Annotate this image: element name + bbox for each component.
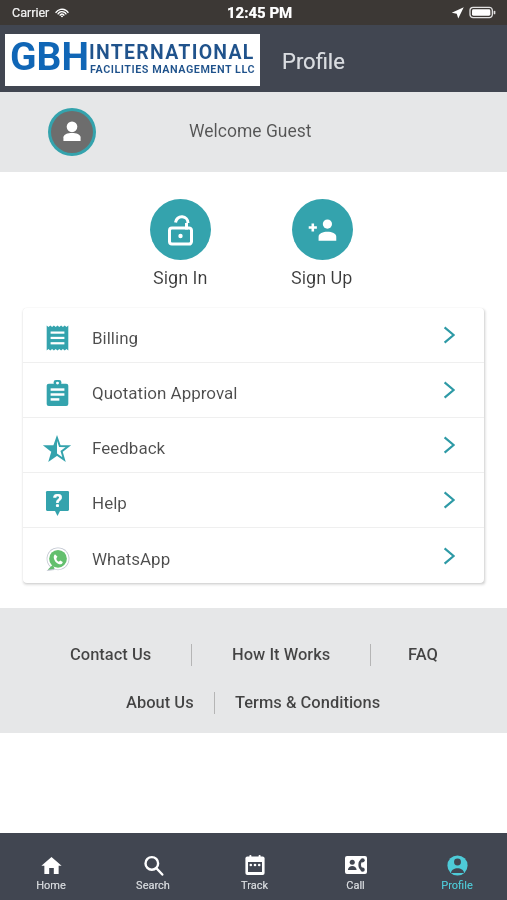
button[interactable]: Profile	[406, 833, 507, 900]
staticText: Profile	[441, 879, 473, 892]
button[interactable]: GBH International Facilities Management …	[5, 34, 260, 86]
staticText: Terms & Conditions	[235, 693, 381, 712]
button[interactable]: Quotation Approval	[23, 363, 484, 418]
staticText: Sign In	[153, 267, 208, 288]
staticText: WhatsApp	[92, 549, 171, 569]
button[interactable]: About Us	[126, 690, 214, 715]
button[interactable]: Terms & Conditions	[215, 690, 381, 715]
staticText: FACILITIES MANAGEMENT LLC	[90, 63, 256, 76]
button[interactable]: Sign Up	[291, 199, 353, 288]
staticText: Feedback	[92, 438, 166, 458]
button[interactable]: FAQ	[371, 642, 438, 667]
staticText: Billing	[92, 328, 139, 348]
staticText: INTERNATIONAL	[89, 41, 255, 64]
staticText: Quotation Approval	[92, 383, 238, 403]
button[interactable]: Contact Us	[70, 642, 191, 667]
button[interactable]: ?	[23, 473, 484, 528]
staticText: Contact Us	[70, 645, 152, 664]
button[interactable]: Feedback	[23, 418, 484, 473]
staticText: How It Works	[232, 645, 331, 664]
button[interactable]: Home	[0, 833, 102, 900]
button[interactable]: Search	[102, 833, 204, 900]
staticText: FAQ	[408, 645, 438, 664]
staticText: Track	[241, 879, 268, 892]
staticText: 12:45 PM	[227, 4, 293, 22]
staticText: GBH	[10, 34, 90, 80]
button[interactable]: Billing	[23, 308, 484, 363]
button[interactable]: WhatsApp	[23, 528, 484, 583]
staticText: Call	[346, 879, 365, 892]
staticText: About Us	[126, 693, 194, 712]
button[interactable]: How It Works	[192, 642, 370, 667]
staticText: Carrier	[12, 5, 50, 20]
staticText: Sign Up	[291, 267, 353, 288]
button[interactable]: Call	[305, 833, 406, 900]
staticText: Home	[36, 879, 66, 892]
button[interactable]: Track	[204, 833, 305, 900]
staticText: Help	[92, 493, 127, 513]
staticText: ?	[53, 489, 63, 511]
staticText: Profile	[282, 49, 345, 75]
staticText: Search	[136, 879, 170, 892]
staticText: Welcome Guest	[189, 121, 312, 142]
button[interactable]: Sign In	[149, 199, 211, 288]
